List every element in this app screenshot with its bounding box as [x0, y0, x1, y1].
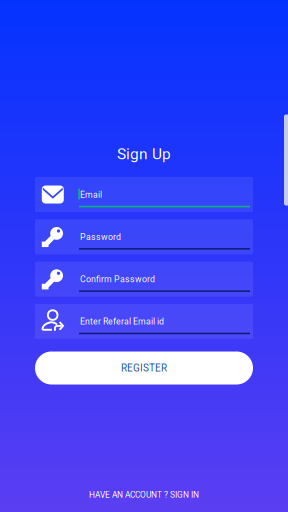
- button[interactable]: Confirm Password: [35, 262, 253, 297]
- button[interactable]: Password: [35, 219, 253, 254]
- button[interactable]: HAVE AN ACCOUNT ? SIGN IN: [54, 487, 234, 503]
- button[interactable]: Enter Referal Email id: [35, 304, 253, 339]
- staticText: REGISTER: [121, 362, 167, 374]
- button[interactable]: Email: [35, 177, 253, 212]
- staticText: Confirm Password: [80, 274, 155, 284]
- staticText: Email: [80, 189, 102, 200]
- staticText: Sign Up: [117, 145, 171, 163]
- staticText: HAVE AN ACCOUNT ? SIGN IN: [89, 490, 199, 500]
- staticText: Password: [80, 232, 121, 242]
- staticText: Enter Referal Email id: [80, 316, 164, 327]
- button[interactable]: REGISTER: [35, 351, 253, 384]
